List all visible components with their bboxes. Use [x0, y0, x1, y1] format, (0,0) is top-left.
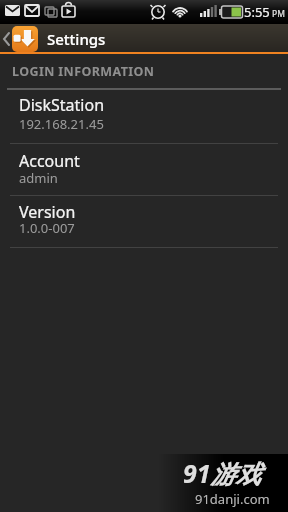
- button[interactable]: [12, 26, 38, 52]
- staticText: Version: [19, 201, 76, 223]
- button[interactable]: Account: [0, 144, 288, 195]
- staticText: 192.168.21.45: [19, 115, 104, 133]
- staticText: 5:55 PM: [244, 3, 285, 21]
- button[interactable]: [0, 24, 12, 54]
- staticText: LOGIN INFORMATION: [12, 63, 155, 80]
- staticText: DiskStation: [19, 94, 105, 116]
- button[interactable]: Version: [0, 196, 288, 247]
- staticText: Settings: [47, 29, 106, 49]
- staticText: Account: [19, 150, 80, 172]
- staticText: 1.0.0-007: [19, 219, 75, 237]
- staticText: admin: [19, 169, 58, 187]
- button[interactable]: DiskStation: [0, 90, 288, 143]
- staticText: 91游戏: [183, 456, 261, 490]
- staticText: 91danji.com: [195, 490, 270, 508]
